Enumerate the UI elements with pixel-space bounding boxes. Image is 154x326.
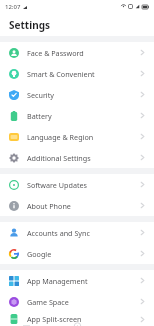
button[interactable]: Language & Region — [0, 126, 154, 147]
staticText: Battery — [27, 111, 139, 121]
button[interactable]: Security — [0, 84, 154, 105]
staticText: App Management — [27, 276, 139, 286]
button[interactable]: App Management — [0, 270, 154, 291]
button[interactable]: Face & Password — [0, 42, 154, 63]
button[interactable]: Battery — [0, 105, 154, 126]
staticText: Accounts and Sync — [27, 228, 139, 238]
button[interactable]: Additional Settings — [0, 147, 154, 168]
staticText: Security — [27, 90, 139, 100]
button[interactable]: Google — [0, 243, 154, 264]
staticText: Game Space — [27, 297, 139, 307]
staticText: Software Updates — [27, 180, 139, 190]
button[interactable]: Software Updates — [0, 174, 154, 195]
button[interactable]: Accounts and Sync — [0, 222, 154, 243]
button[interactable]: Game Space — [0, 291, 154, 312]
button[interactable]: App Split-screen — [0, 312, 154, 326]
staticText: Settings — [9, 18, 50, 32]
staticText: App Split-screen — [27, 314, 139, 324]
staticText: About Phone — [27, 201, 139, 211]
staticText: Language & Region — [27, 132, 139, 142]
staticText: Google — [27, 249, 139, 259]
staticText: Additional Settings — [27, 153, 139, 163]
staticText: 12:07 — [5, 3, 21, 11]
button[interactable]: About Phone — [0, 195, 154, 216]
staticText: Face & Password — [27, 48, 139, 58]
button[interactable]: Smart & Convenient — [0, 63, 154, 84]
staticText: Smart & Convenient — [27, 69, 139, 79]
